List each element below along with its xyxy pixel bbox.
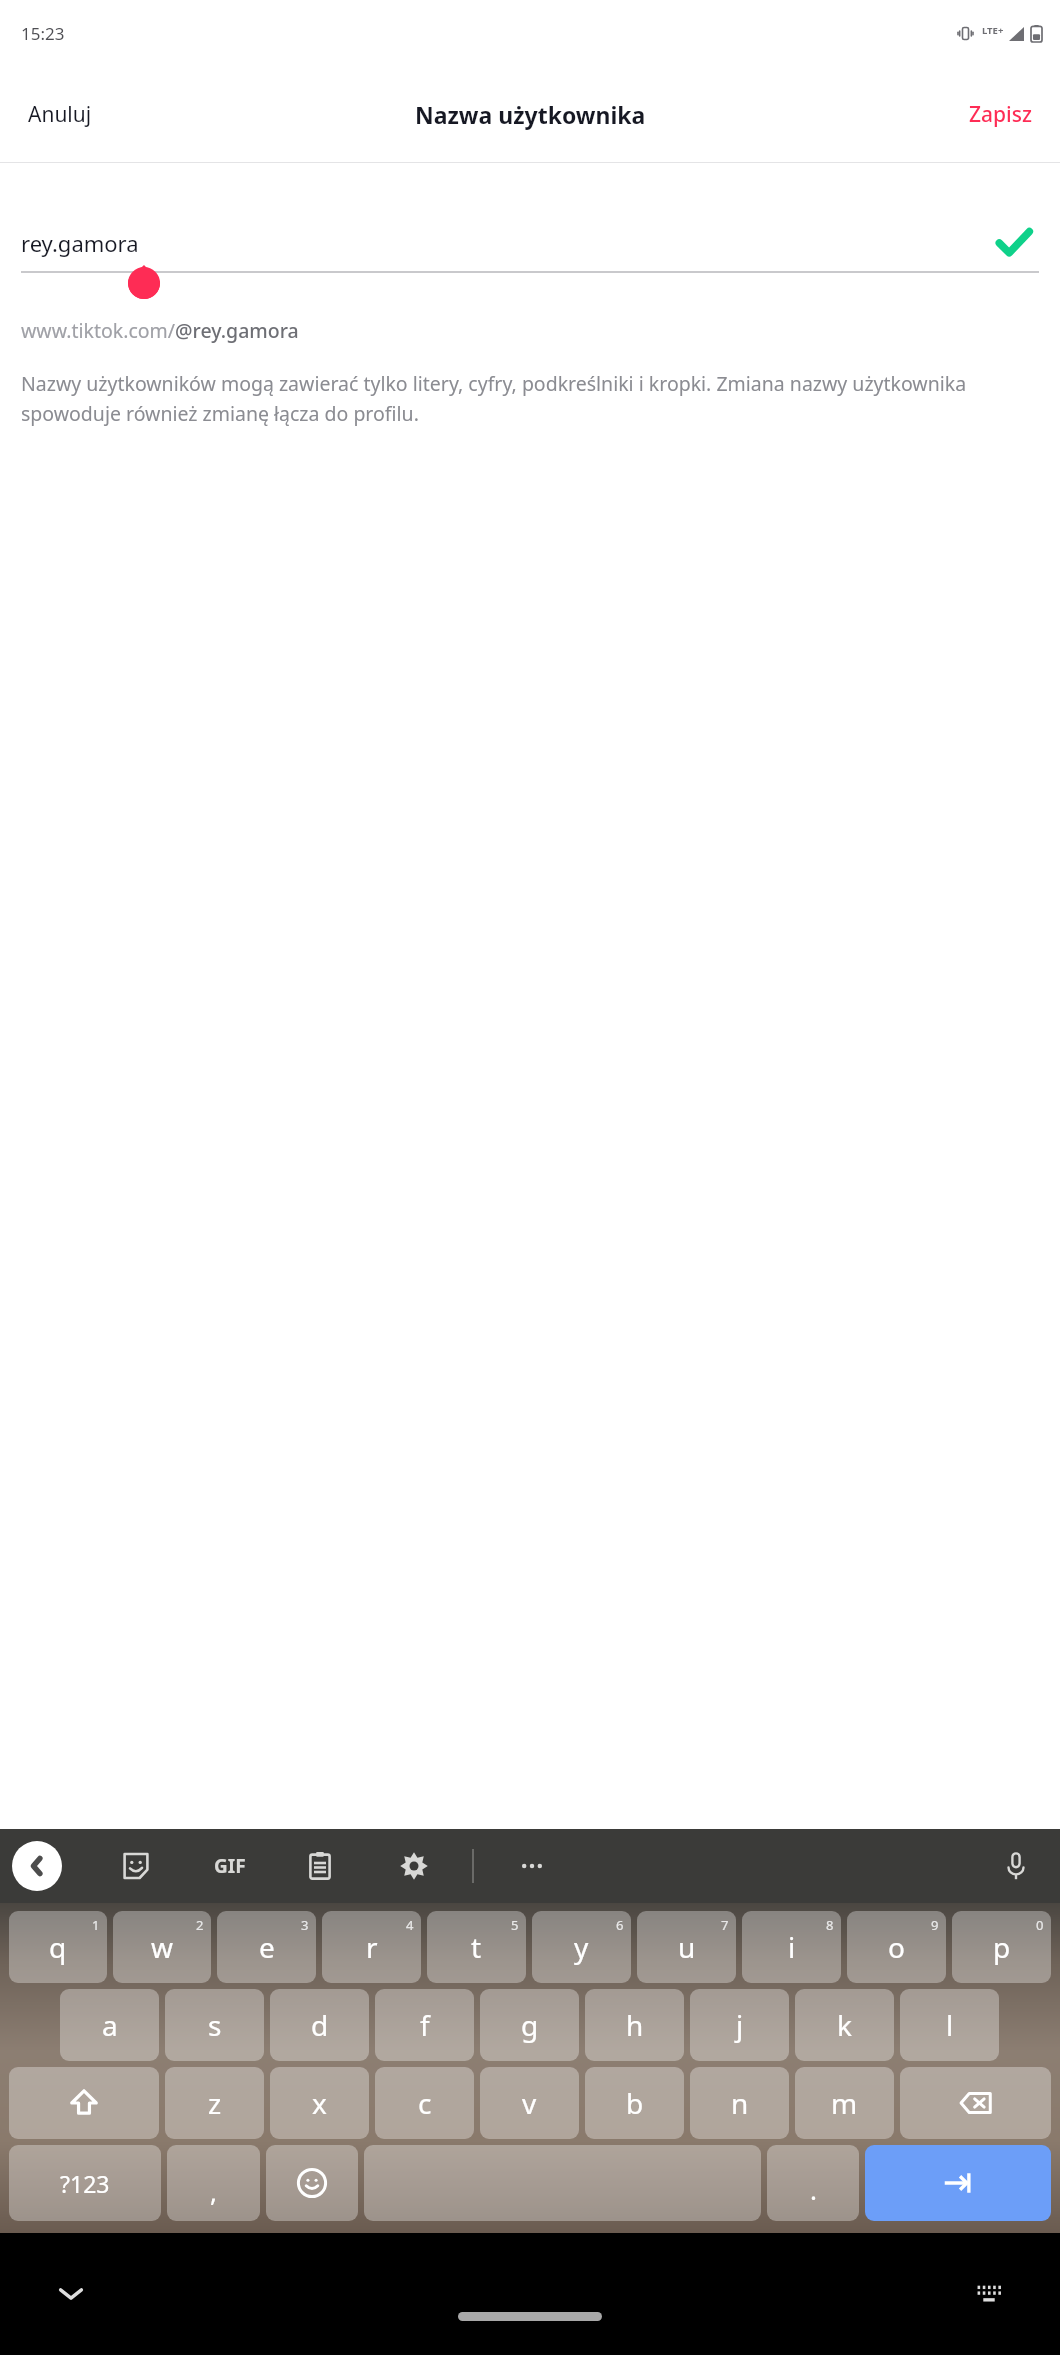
staticText: 9 [931,1916,939,1934]
staticText: Nazwy użytkowników mogą zawierać tylko l… [21,370,1030,426]
button[interactable]: s [165,1989,264,2061]
button[interactable]: b [585,2067,684,2139]
staticText: n [731,2084,749,2122]
staticText: x [312,2084,327,2122]
button[interactable]: Anuluj [0,88,120,141]
button[interactable]: x [270,2067,369,2139]
button[interactable]: Emoji [266,2145,358,2221]
staticText: Anuluj [28,100,92,129]
staticText: r [366,1928,378,1966]
button[interactable]: Backspace [900,2067,1051,2139]
button[interactable]: k [795,1989,894,2061]
button[interactable]: Space [364,2145,761,2221]
button[interactable]: GIF [206,1845,254,1887]
staticText: l [946,2006,954,2044]
button[interactable]: Back [12,1841,62,1891]
staticText: w [151,1928,174,1966]
button[interactable]: More [508,1842,556,1890]
button[interactable]: Voice input [992,1842,1040,1890]
button[interactable]: Clipboard [296,1842,344,1890]
staticText: Zapisz [969,100,1032,129]
staticText: s [208,2006,222,2044]
staticText: 2 [196,1916,204,1934]
button[interactable]: t [427,1911,526,1983]
button[interactable]: m [795,2067,894,2139]
staticText: GIF [214,1853,246,1879]
staticText: 15:23 [21,22,65,45]
button[interactable]: Settings [390,1842,438,1890]
staticText: j [736,2006,744,2044]
button[interactable]: Switch keyboard [966,2271,1012,2317]
button[interactable]: u [637,1911,736,1983]
staticText: rey.gamora [21,228,139,258]
button[interactable]: Shift [9,2067,159,2139]
staticText: Nazwa użytkownika [415,99,646,130]
staticText: 7 [721,1916,729,1934]
staticText: 8 [826,1916,834,1934]
staticText: o [888,1928,905,1966]
staticText: 1 [92,1916,100,1934]
button[interactable]: r [322,1911,421,1983]
staticText: t [471,1928,482,1966]
staticText: g [521,2006,539,2044]
button[interactable]: n [690,2067,789,2139]
button[interactable]: rey.gamora [0,215,1060,271]
button[interactable]: a [60,1989,159,2061]
staticText: 3 [301,1916,309,1934]
button[interactable]: f [375,1989,474,2061]
button[interactable]: h [585,1989,684,2061]
button[interactable]: j [690,1989,789,2061]
staticText: z [208,2084,222,2122]
button[interactable]: d [270,1989,369,2061]
staticText: a [102,2006,118,2044]
button[interactable]: Sticker [112,1842,160,1890]
staticText: . [810,2172,817,2207]
staticText: 6 [616,1916,624,1934]
staticText: q [49,1928,67,1966]
button[interactable]: g [480,1989,579,2061]
staticText: d [311,2006,329,2044]
button[interactable]: Next [865,2145,1051,2221]
staticText: p [993,1928,1011,1966]
button[interactable]: l [900,1989,999,2061]
button[interactable]: y [532,1911,631,1983]
button[interactable]: p [952,1911,1051,1983]
staticText: u [678,1928,696,1966]
staticText: y [574,1928,589,1966]
button[interactable]: i [742,1911,841,1983]
staticText: 0 [1036,1916,1044,1934]
staticText: v [522,2084,537,2122]
staticText: f [420,2006,430,2044]
button[interactable]: v [480,2067,579,2139]
staticText: c [418,2084,432,2122]
button[interactable]: , [167,2145,260,2221]
staticText: 5 [511,1916,519,1934]
staticText: b [626,2084,644,2122]
staticText: e [259,1928,275,1966]
staticText: m [831,2084,858,2122]
button[interactable]: e [217,1911,316,1983]
button[interactable]: z [165,2067,264,2139]
button[interactable]: q [9,1911,107,1983]
staticText: www.tiktok.com/@rey.gamora [21,317,299,344]
staticText: ?123 [60,2168,110,2199]
button[interactable]: Zapisz [941,88,1060,141]
button[interactable]: c [375,2067,474,2139]
button[interactable]: . [767,2145,859,2221]
staticText: LTE+ [982,24,1004,37]
button[interactable]: Hide keyboard [48,2271,94,2317]
staticText: , [210,2174,217,2209]
button[interactable]: ?123 [9,2145,161,2221]
button[interactable]: w [113,1911,211,1983]
staticText: i [788,1928,796,1966]
staticText: k [837,2006,852,2044]
button[interactable]: o [847,1911,946,1983]
staticText: h [626,2006,644,2044]
staticText: 4 [406,1916,414,1934]
